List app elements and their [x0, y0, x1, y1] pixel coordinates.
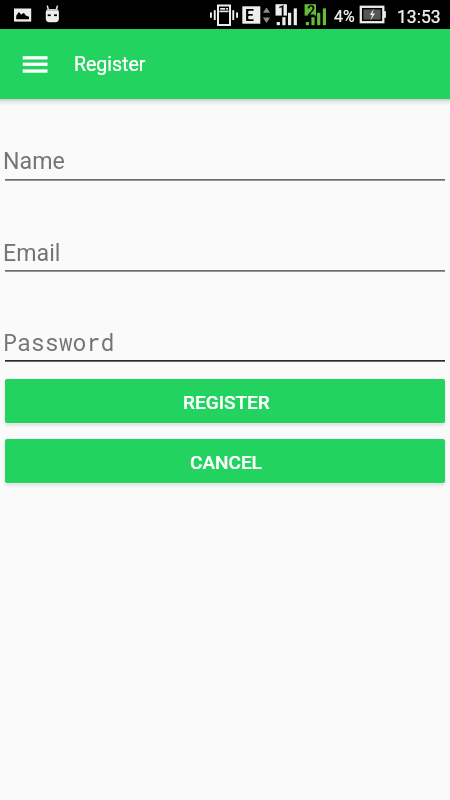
button[interactable]: Name: [0, 137, 450, 181]
staticText: 4%: [334, 7, 355, 26]
staticText: Register: [74, 53, 146, 76]
button[interactable]: CANCEL: [5, 439, 445, 483]
staticText: Password: [3, 327, 115, 358]
button[interactable]: Open navigation drawer: [10, 35, 60, 93]
staticText: Email: [3, 239, 61, 266]
button[interactable]: REGISTER: [5, 379, 445, 423]
staticText: REGISTER: [183, 391, 270, 413]
staticText: Name: [3, 147, 65, 174]
staticText: 13:53: [397, 7, 441, 28]
staticText: CANCEL: [190, 451, 262, 473]
button[interactable]: Email: [0, 229, 450, 272]
staticText: E: [245, 6, 254, 25]
button[interactable]: Password: [0, 317, 450, 362]
staticText: 2: [307, 3, 316, 20]
staticText: 1: [278, 3, 287, 20]
